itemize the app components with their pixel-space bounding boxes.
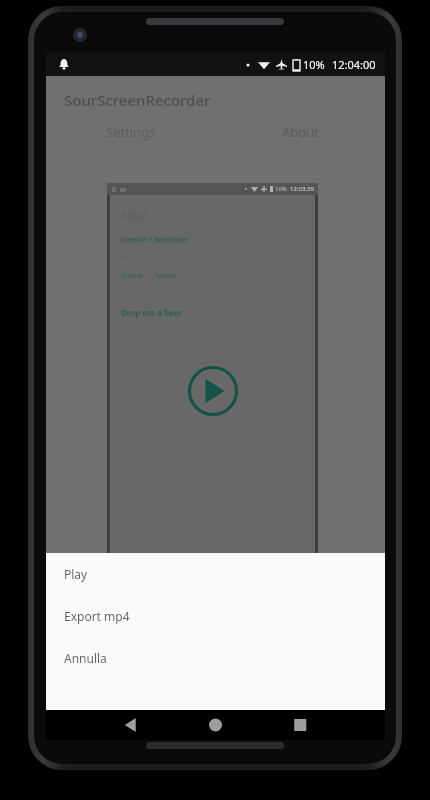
- staticText: Annulla: [64, 650, 107, 666]
- button[interactable]: Export mp4: [46, 595, 385, 637]
- staticText: About: [282, 123, 319, 141]
- staticText: 12:04:00: [332, 57, 376, 72]
- staticText: Settings: [106, 123, 156, 141]
- staticText: Github: [121, 271, 144, 281]
- button[interactable]: Play video: [187, 365, 239, 417]
- staticText: Play: [64, 566, 88, 582]
- staticText: Twitter: [154, 271, 177, 281]
- staticText: 10%: [275, 185, 287, 193]
- staticText: Creator / developer: [121, 235, 189, 245]
- staticText: Export mp4: [64, 608, 130, 624]
- button[interactable]: 10%: [107, 183, 318, 563]
- button[interactable]: Play: [46, 553, 385, 595]
- button[interactable]: About: [215, 123, 385, 141]
- staticText: 10%: [303, 57, 325, 72]
- button[interactable]: Settings: [46, 123, 215, 141]
- staticText: 12:03:39: [290, 185, 314, 193]
- button[interactable]: Annulla: [46, 637, 385, 679]
- staticText: Drop me a beer: [121, 307, 183, 318]
- staticText: About: [121, 209, 148, 221]
- staticText: SourScreenRecorder: [64, 90, 211, 110]
